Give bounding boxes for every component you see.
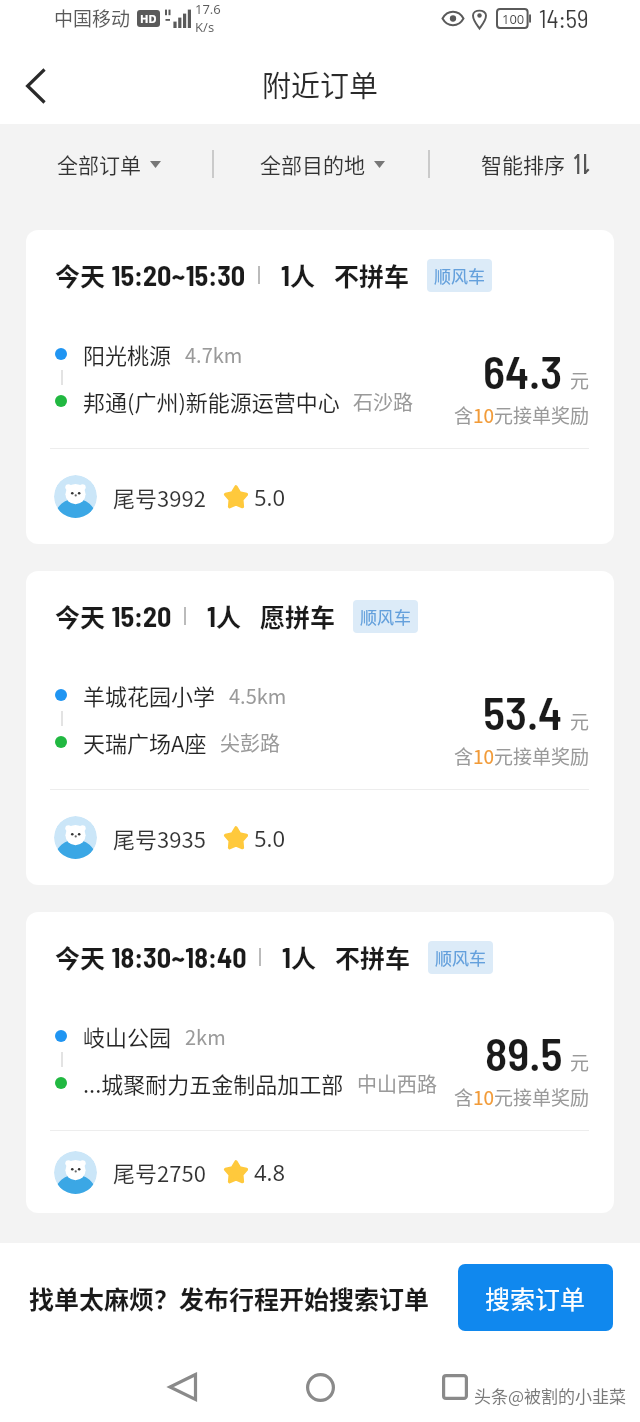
staticText: 阳光桃源	[83, 338, 172, 370]
staticText: 4.5km	[229, 681, 287, 710]
staticText: 元	[570, 366, 590, 394]
staticText: 尖彭路	[220, 728, 280, 757]
button[interactable]: Back	[150, 1355, 214, 1419]
staticText: 元	[570, 707, 590, 735]
staticText: 头条@被割的小韭菜	[474, 1383, 627, 1408]
staticText: 石沙路	[353, 387, 413, 416]
staticText: 1人	[282, 939, 316, 975]
button[interactable]: Home	[288, 1355, 352, 1419]
button[interactable]: 全部订单	[49, 141, 169, 187]
staticText: 不拼车	[335, 939, 411, 975]
staticText: 邦通(广州)新能源运营中心	[83, 385, 340, 417]
staticText: 2km	[185, 1022, 226, 1051]
staticText: 今天 15:20~15:30	[55, 257, 246, 293]
button[interactable]: Back	[9, 60, 61, 112]
staticText: 全部目的地	[260, 149, 365, 179]
button[interactable]: Recents	[423, 1355, 487, 1419]
staticText: ...城聚耐力五金制品加工部	[83, 1067, 344, 1099]
button[interactable]: 今天 15:20	[26, 571, 614, 885]
staticText: 全部订单	[57, 149, 141, 179]
staticText: 中国移动	[54, 4, 131, 32]
button[interactable]: 全部目的地	[252, 141, 393, 187]
staticText: 5.0	[254, 823, 286, 853]
staticText: 4.8	[254, 1157, 286, 1187]
staticText: 含10元接单奖励	[454, 742, 590, 770]
button[interactable]: 智能排序	[473, 141, 597, 187]
staticText: 4.7km	[185, 340, 243, 369]
staticText: 1人	[207, 598, 241, 634]
staticText: 顺风车	[360, 604, 411, 629]
staticText: 今天 18:30~18:40	[55, 939, 247, 975]
staticText: 89.5	[485, 1025, 563, 1080]
staticText: 附近订单	[262, 63, 379, 105]
staticText: 不拼车	[334, 257, 410, 293]
staticText: K/s	[195, 18, 215, 36]
button[interactable]: 今天 15:20~15:30	[26, 230, 614, 544]
staticText: 尾号3992	[113, 481, 206, 513]
staticText: 元	[570, 1048, 590, 1076]
staticText: 含10元接单奖励	[454, 1083, 590, 1111]
staticText: 智能排序	[481, 149, 565, 179]
staticText: 羊城花园小学	[83, 679, 216, 711]
staticText: 1人	[281, 257, 315, 293]
staticText: 17.6	[195, 0, 221, 18]
staticText: 100	[502, 10, 525, 28]
staticText: 今天 15:20	[55, 598, 172, 634]
staticText: 岐山公园	[83, 1020, 172, 1052]
staticText: 愿拼车	[260, 598, 336, 634]
staticText: 顺风车	[435, 945, 486, 970]
staticText: 53.4	[483, 684, 563, 739]
staticText: 搜索订单	[485, 1280, 586, 1316]
staticText: HD	[140, 11, 157, 26]
button[interactable]: 搜索订单	[458, 1264, 613, 1331]
staticText: 64.3	[483, 343, 563, 398]
staticText: 14:59	[539, 3, 589, 33]
staticText: 尾号2750	[113, 1156, 206, 1188]
staticText: 尾号3935	[113, 822, 206, 854]
staticText: 找单太麻烦？发布行程开始搜索订单	[29, 1280, 430, 1316]
button[interactable]: 今天 18:30~18:40	[26, 912, 614, 1213]
staticText: 顺风车	[434, 263, 485, 288]
staticText: 中山西路	[357, 1069, 437, 1098]
staticText: 5.0	[254, 482, 286, 512]
staticText: 含10元接单奖励	[454, 401, 590, 429]
staticText: 天瑞广场A座	[83, 726, 207, 758]
